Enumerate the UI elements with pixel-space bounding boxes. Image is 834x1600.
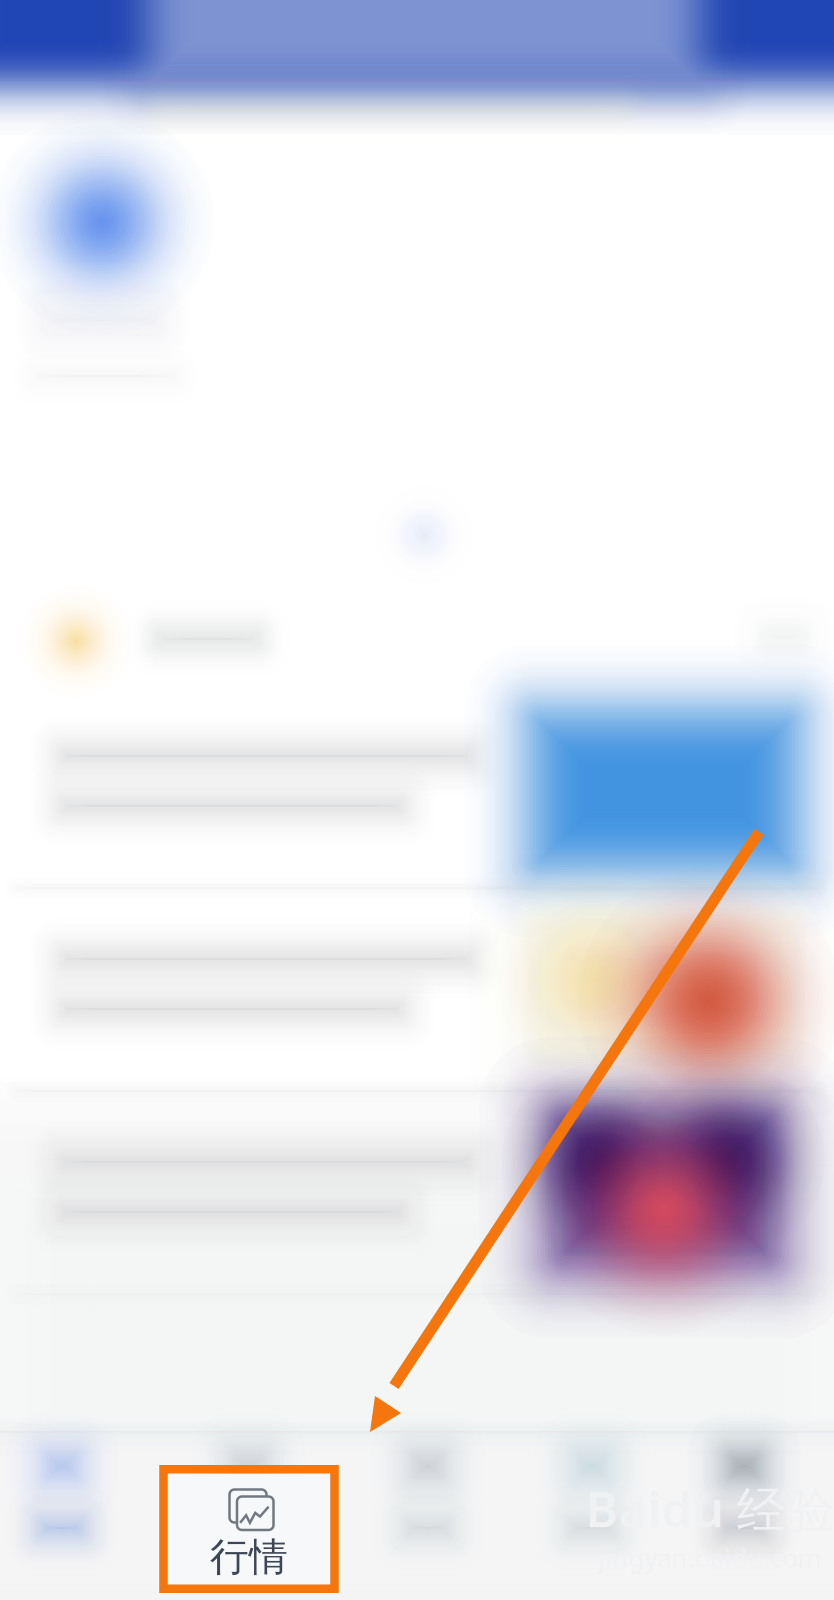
button[interactable] [0, 0, 834, 203]
staticText: Baidu 经验 [585, 1475, 834, 1541]
button[interactable]: 自选 [0, 0, 834, 1600]
staticText: jingyan.baidu.com [598, 1541, 821, 1575]
button[interactable]: 理财 [0, 0, 834, 1600]
button[interactable]: 交易 [0, 0, 834, 1600]
button[interactable] [0, 0, 834, 203]
button[interactable]: 行情 [0, 0, 834, 1600]
button[interactable]: 行情 [0, 0, 834, 1600]
button[interactable]: 我的 [0, 0, 834, 1600]
button[interactable] [0, 0, 834, 203]
staticText: 行情 [210, 1533, 288, 1581]
